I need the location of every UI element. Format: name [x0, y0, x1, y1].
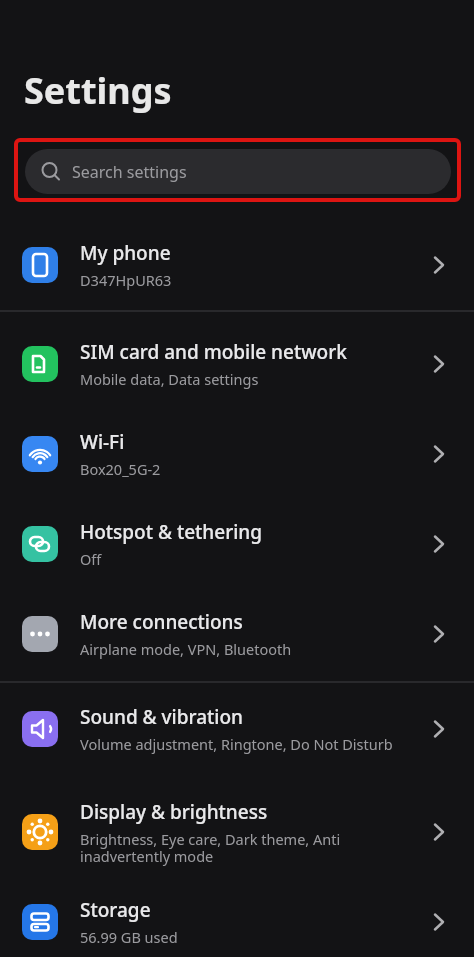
staticText: More connections: [80, 609, 243, 635]
staticText: Box20_5G-2: [80, 459, 161, 479]
staticText: Brightness, Eye care, Dark theme, Anti i…: [80, 829, 341, 866]
button[interactable]: Wi-Fi: [0, 409, 474, 499]
staticText: Settings: [24, 66, 172, 115]
button[interactable]: Sound & vibration: [0, 684, 474, 774]
staticText: Hotspot & tethering: [80, 519, 263, 545]
staticText: Mobile data, Data settings: [80, 369, 259, 389]
staticText: My phone: [80, 240, 171, 266]
button[interactable]: Display & brightness: [0, 778, 474, 886]
staticText: Sound & vibration: [80, 704, 243, 730]
staticText: D347HpUR63: [80, 270, 172, 290]
staticText: Wi-Fi: [80, 429, 125, 455]
staticText: Display & brightness: [80, 799, 268, 825]
staticText: Search settings: [72, 161, 187, 183]
staticText: Storage: [80, 897, 151, 923]
staticText: SIM card and mobile network: [80, 339, 347, 365]
button[interactable]: Hotspot & tethering: [0, 499, 474, 589]
staticText: 56.99 GB used: [80, 927, 178, 947]
button[interactable]: My phone: [0, 220, 474, 310]
button[interactable]: Storage: [0, 886, 474, 957]
button[interactable]: SIM card and mobile network: [0, 319, 474, 409]
staticText: Volume adjustment, Ringtone, Do Not Dist…: [80, 734, 393, 754]
staticText: Airplane mode, VPN, Bluetooth: [80, 639, 292, 659]
staticText: Off: [80, 549, 102, 569]
button[interactable]: Search settings: [25, 149, 451, 194]
button[interactable]: More connections: [0, 589, 474, 679]
